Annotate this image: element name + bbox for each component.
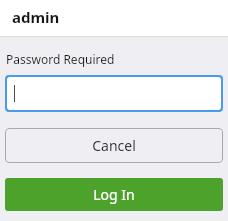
staticText: admin bbox=[12, 7, 60, 27]
staticText: Password Required bbox=[6, 51, 115, 67]
button[interactable]: Log In bbox=[5, 178, 223, 211]
staticText: Log In bbox=[93, 185, 135, 204]
button[interactable]: Cancel bbox=[5, 128, 223, 163]
button[interactable]: Password input field bbox=[5, 75, 223, 112]
staticText: Cancel bbox=[92, 136, 136, 155]
